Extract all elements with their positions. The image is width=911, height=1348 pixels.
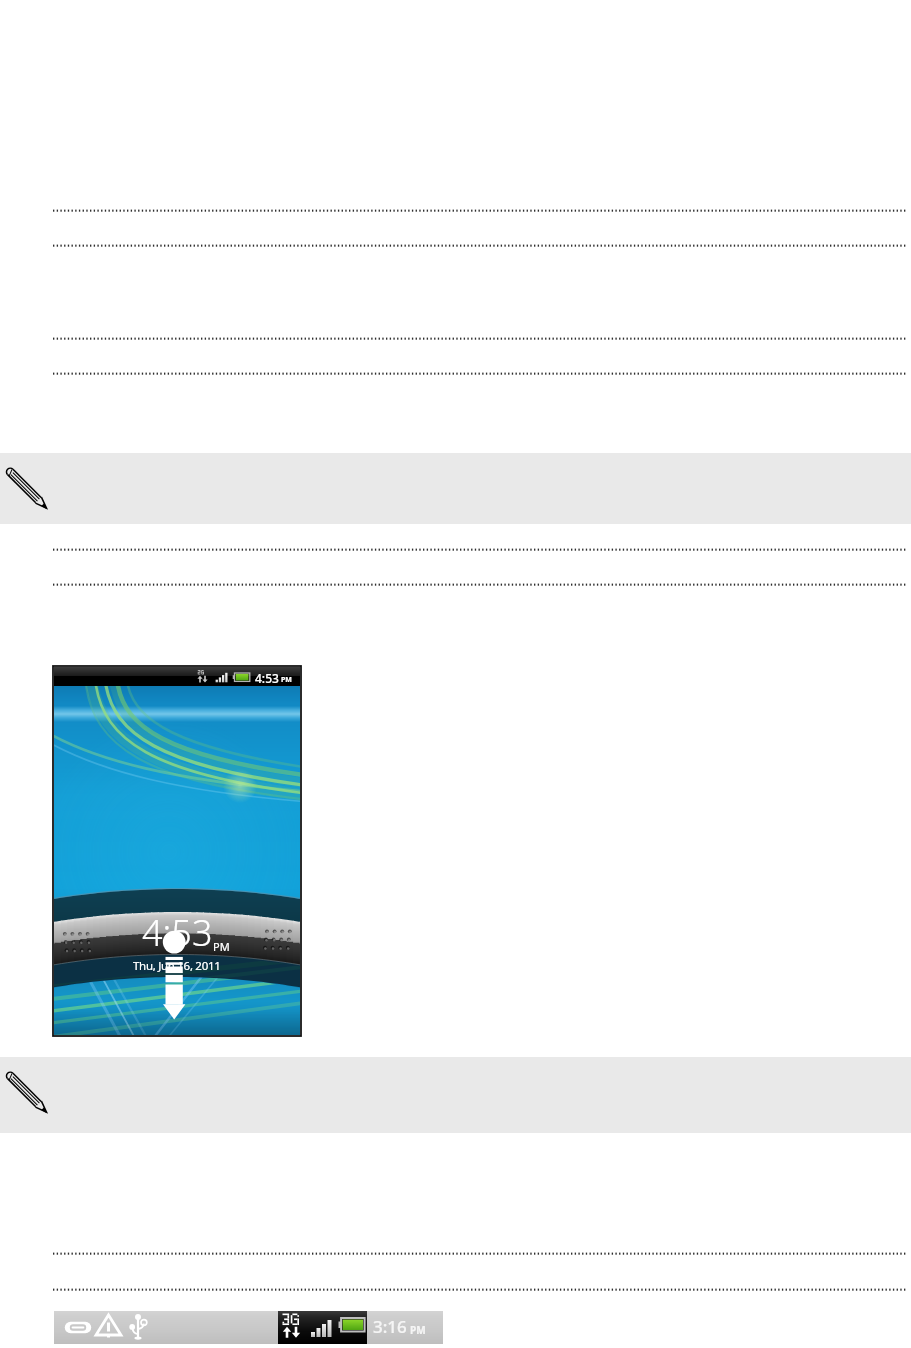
button[interactable]: Lock screen illustration [54, 667, 300, 1035]
button[interactable]: Status bar illustration [54, 1311, 443, 1344]
